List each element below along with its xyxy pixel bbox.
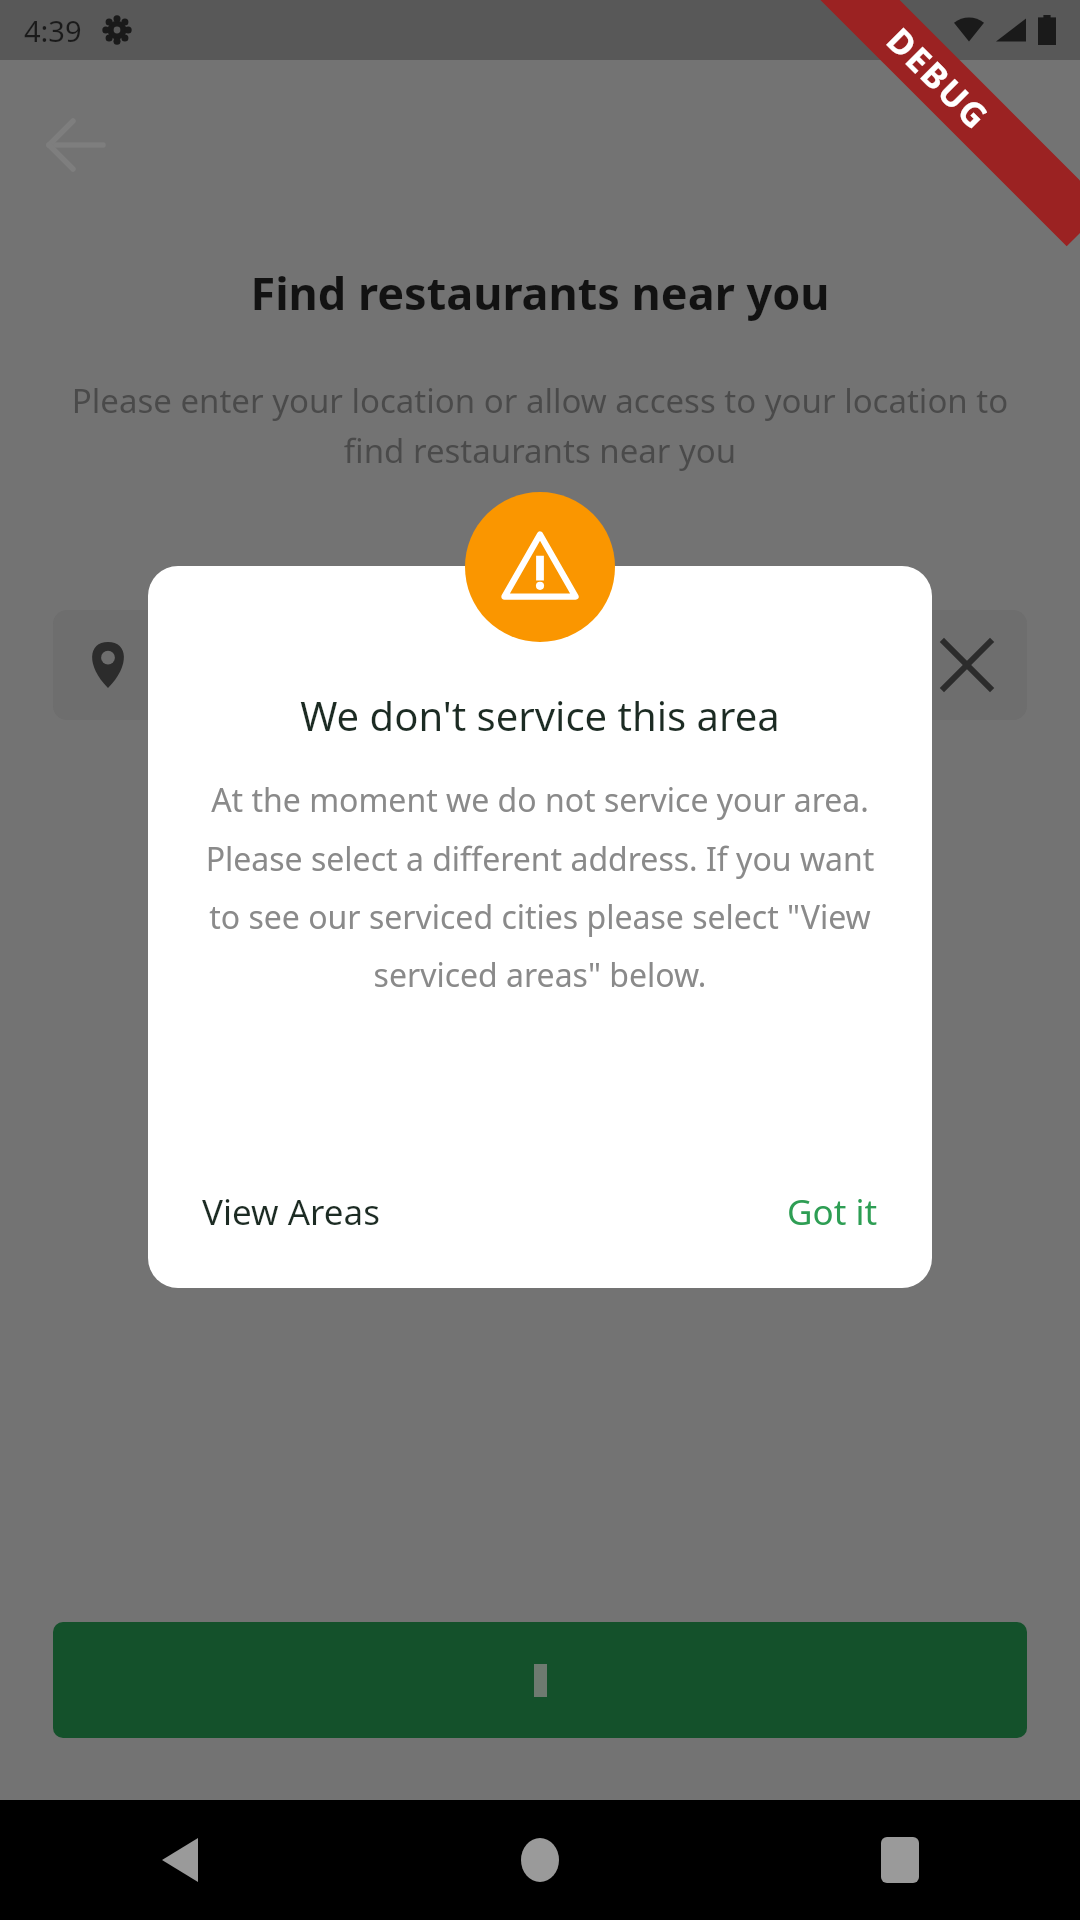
staticText: Please enter your location or allow acce… [58,378,1022,473]
staticText: Got it [787,1188,878,1236]
button[interactable]: Clear [53,610,1027,720]
button[interactable]: Back [0,1800,360,1920]
staticText: 4:39 [24,11,82,50]
staticText: DEBUG [877,17,999,139]
staticText: At the moment we do not service your are… [196,778,884,996]
staticText: We don't service this area [300,688,780,742]
button[interactable]: Recent apps [720,1800,1080,1920]
button[interactable]: Clear [907,610,1027,720]
button[interactable]: Home [360,1800,720,1920]
button[interactable]: View Areas [202,1188,380,1236]
staticText: View Areas [202,1188,380,1236]
staticText: Find restaurants near you [250,262,830,323]
button[interactable]: Got it [787,1188,878,1236]
button[interactable] [53,1622,1027,1738]
